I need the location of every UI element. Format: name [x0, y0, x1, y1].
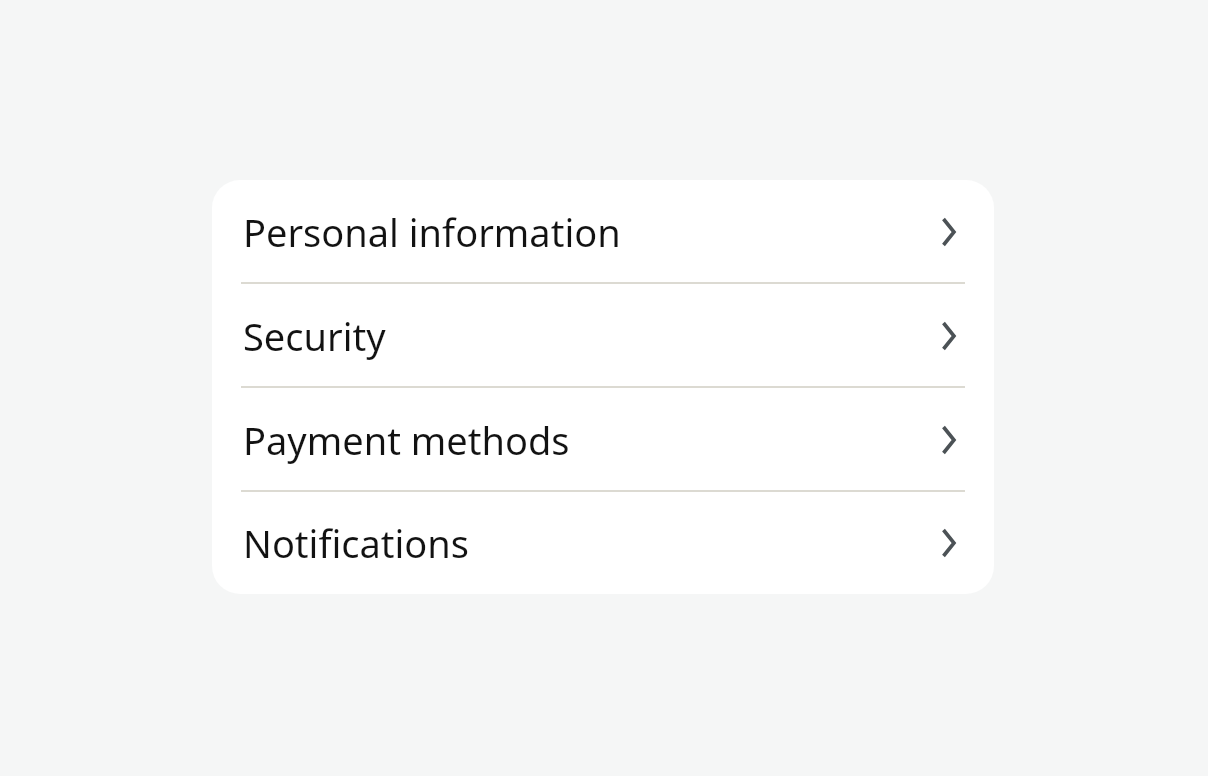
- button[interactable]: Personal information: [212, 180, 994, 284]
- staticText: Notifications: [243, 517, 938, 569]
- button[interactable]: Payment methods: [212, 388, 994, 492]
- staticText: Security: [243, 310, 938, 362]
- button[interactable]: Notifications: [212, 492, 994, 594]
- staticText: Personal information: [243, 206, 938, 258]
- button[interactable]: Security: [212, 284, 994, 388]
- staticText: Payment methods: [243, 414, 938, 466]
